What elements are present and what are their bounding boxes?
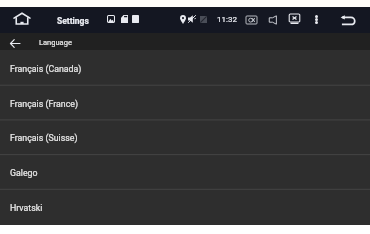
button[interactable]: Home: [12, 10, 32, 27]
button[interactable]: Back: [339, 12, 357, 28]
button[interactable]: More options: [310, 11, 323, 27]
staticText: 11:32: [217, 15, 237, 24]
staticText: Settings: [57, 16, 89, 26]
button[interactable]: Navigate up: [7, 36, 23, 50]
staticText: Hrvatski: [10, 203, 43, 213]
button[interactable]: Français (Canada): [0, 50, 370, 85]
staticText: Galego: [10, 168, 38, 178]
staticText: Français (France): [10, 99, 78, 109]
staticText: Français (Suisse): [10, 133, 78, 143]
button[interactable]: Français (Suisse): [0, 119, 370, 154]
staticText: Language: [39, 38, 72, 47]
button[interactable]: Français (France): [0, 85, 370, 120]
staticText: Français (Canada): [10, 64, 82, 74]
button[interactable]: Galego: [0, 154, 370, 189]
button[interactable]: Hrvatski: [0, 189, 370, 224]
